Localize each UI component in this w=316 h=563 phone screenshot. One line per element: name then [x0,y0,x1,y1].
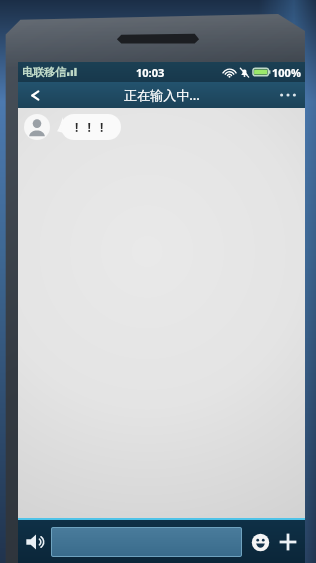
button[interactable]: Back [18,82,52,108]
staticText: 电联移信 [22,65,66,79]
staticText: 10:03 [136,65,165,80]
button[interactable]: More options [271,82,305,108]
staticText: 正在输入中... [124,86,200,104]
button[interactable]: Emoji [246,525,274,559]
button[interactable]: Contact avatar [24,114,50,140]
staticText: 100% [272,65,301,80]
button[interactable]: ! ! ! [61,114,121,140]
staticText: ! ! ! [75,119,107,135]
button[interactable] [51,527,242,557]
button[interactable]: Voice message [21,525,51,559]
button[interactable]: Add attachment [274,525,302,559]
